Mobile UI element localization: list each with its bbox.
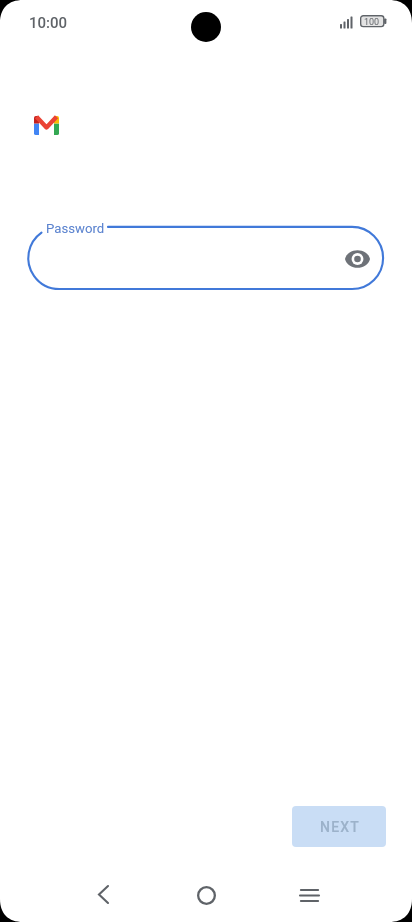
- button[interactable]: Show password: [337, 238, 378, 279]
- staticText: 10:00: [29, 14, 68, 32]
- button[interactable]: Password: [27, 226, 384, 290]
- button[interactable]: NEXT: [292, 806, 386, 847]
- staticText: NEXT: [320, 819, 361, 835]
- button[interactable]: Recent apps: [285, 871, 333, 919]
- button[interactable]: Back: [79, 870, 127, 918]
- staticText: 100: [364, 17, 380, 28]
- staticText: Password: [46, 221, 105, 236]
- button[interactable]: Home: [182, 871, 230, 919]
